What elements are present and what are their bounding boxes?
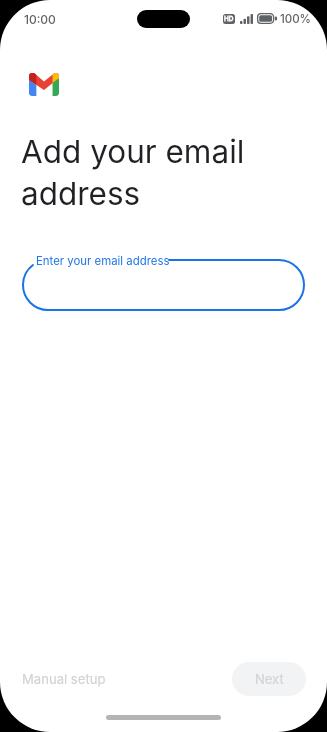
button[interactable]: Manual setup <box>8 662 120 696</box>
staticText: 100% <box>280 12 312 26</box>
staticText: Next <box>255 671 284 687</box>
button[interactable]: Enter your email address <box>23 251 304 311</box>
staticText: HD <box>224 15 234 23</box>
staticText: 10:00 <box>24 12 56 27</box>
button[interactable]: Next <box>232 662 306 696</box>
staticText: Enter your email address <box>36 254 170 268</box>
staticText: Add your email address <box>21 132 245 212</box>
staticText: Manual setup <box>22 671 106 687</box>
